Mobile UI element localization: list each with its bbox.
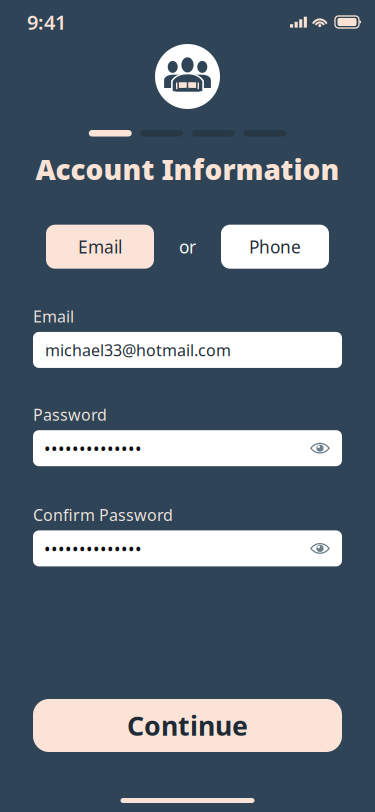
button[interactable]: Show password: [305, 530, 335, 566]
button[interactable]: Continue: [33, 699, 342, 752]
staticText: Account Information: [35, 150, 339, 188]
staticText: Confirm Password: [33, 504, 173, 525]
staticText: Email: [33, 306, 74, 327]
button[interactable]: Show password: [305, 430, 335, 466]
staticText: Password: [33, 404, 107, 425]
staticText: Continue: [127, 708, 248, 743]
staticText: ••••••••••••••: [44, 437, 142, 460]
staticText: michael33@hotmail.com: [45, 339, 231, 360]
staticText: Email: [78, 235, 122, 258]
button[interactable]: Phone: [221, 225, 329, 269]
staticText: or: [179, 235, 196, 258]
staticText: Phone: [249, 235, 301, 258]
staticText: 9:41: [27, 9, 66, 35]
button[interactable]: Email: [46, 225, 154, 269]
staticText: ••••••••••••••: [44, 537, 142, 560]
